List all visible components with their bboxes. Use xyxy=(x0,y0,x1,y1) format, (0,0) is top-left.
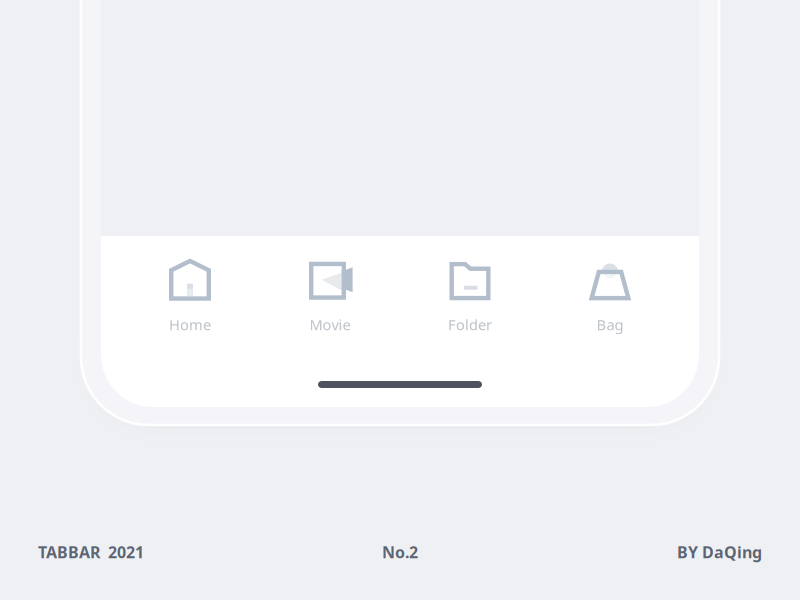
staticText: No.2 xyxy=(382,541,418,563)
button[interactable]: Movie xyxy=(260,250,400,342)
staticText: Home xyxy=(169,315,211,334)
staticText: Bag xyxy=(596,315,623,334)
staticText: Folder xyxy=(448,315,492,334)
staticText: TABBAR 2021 xyxy=(38,541,144,563)
staticText: BY DaQing xyxy=(677,541,762,563)
button[interactable]: Home xyxy=(120,250,260,342)
button[interactable]: Folder xyxy=(400,250,540,342)
staticText: Movie xyxy=(309,315,350,334)
button[interactable]: Bag xyxy=(540,250,680,342)
